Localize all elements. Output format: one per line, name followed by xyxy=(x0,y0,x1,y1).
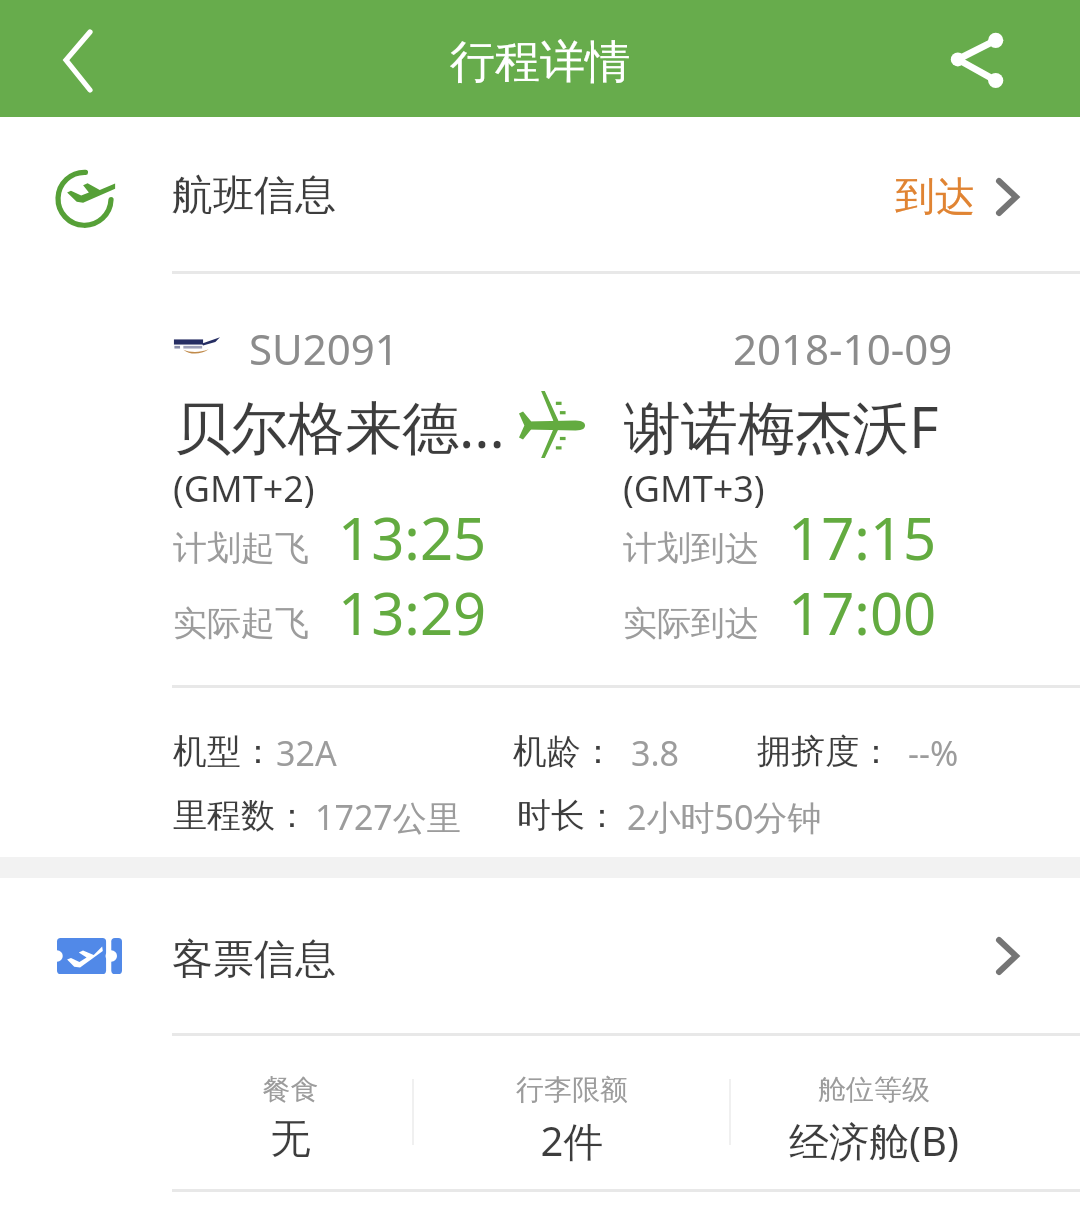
staticText: SU2091 xyxy=(249,320,399,377)
staticText: 经济舱(B) xyxy=(731,1113,1017,1168)
staticText: 计划起飞 xyxy=(173,527,309,570)
staticText: 3.8 xyxy=(631,730,680,776)
staticText: 计划到达 xyxy=(623,527,759,570)
staticText: (GMT+3) xyxy=(623,464,765,513)
staticText: 到达 xyxy=(895,171,975,221)
staticText: 17:15 xyxy=(788,498,937,577)
staticText: 32A xyxy=(276,730,337,776)
staticText: 航班信息 xyxy=(172,170,336,222)
staticText: 行李限额 xyxy=(414,1072,730,1107)
staticText: 拥挤度： xyxy=(757,730,893,773)
button[interactable]: Share xyxy=(930,22,1020,96)
staticText: 机型： xyxy=(173,730,275,773)
staticText: 2件 xyxy=(414,1113,730,1168)
staticText: 2018-10-09 xyxy=(733,320,953,377)
staticText: 无 xyxy=(168,1113,413,1163)
staticText: 实际起飞 xyxy=(173,602,309,645)
staticText: 1727公里 xyxy=(315,794,461,840)
staticText: 餐食 xyxy=(168,1072,413,1107)
staticText: 2小时50分钟 xyxy=(627,794,822,840)
button[interactable]: 客票信息 xyxy=(0,878,1080,1033)
staticText: 舱位等级 xyxy=(731,1072,1017,1107)
staticText: 里程数： xyxy=(173,794,309,837)
staticText: 时长： xyxy=(517,794,619,837)
staticText: 谢诺梅杰沃F xyxy=(624,387,939,465)
button[interactable]: Back xyxy=(40,14,120,104)
staticText: 客票信息 xyxy=(172,934,336,986)
staticText: 机龄： xyxy=(513,730,615,773)
staticText: 13:25 xyxy=(338,498,487,577)
staticText: 17:00 xyxy=(788,573,937,652)
staticText: 行程详情 xyxy=(450,34,630,91)
staticText: 13:29 xyxy=(338,573,487,652)
staticText: 实际到达 xyxy=(623,602,759,645)
staticText: (GMT+2) xyxy=(173,464,315,513)
button[interactable]: 航班信息 xyxy=(0,117,1080,272)
staticText: --% xyxy=(908,730,959,776)
staticText: 贝尔格来德... xyxy=(174,387,505,465)
